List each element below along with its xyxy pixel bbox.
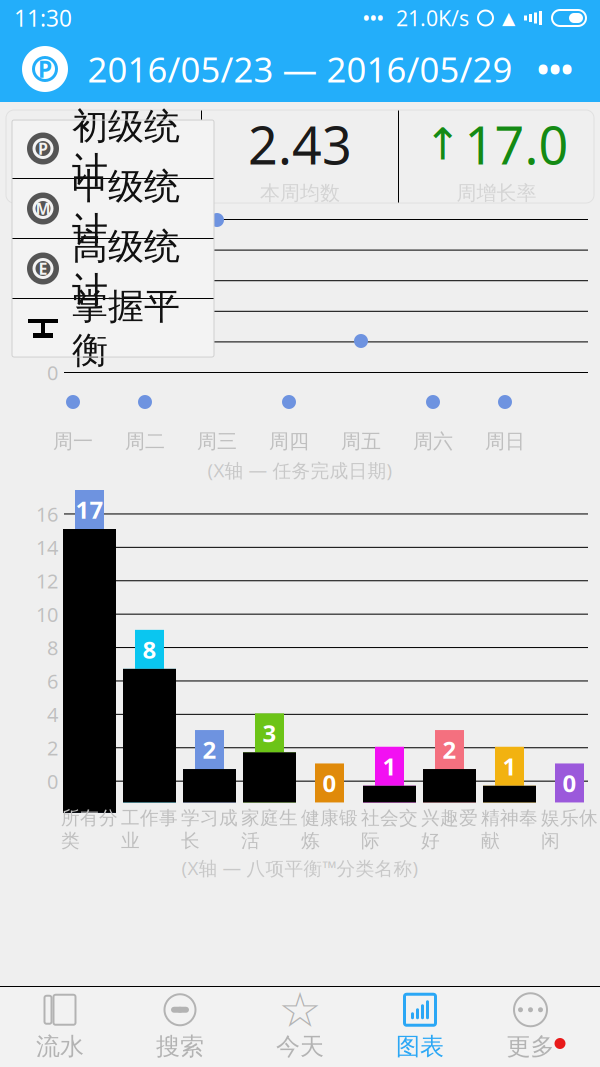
staticText: 今天 <box>276 1032 324 1061</box>
button[interactable]: 图表 <box>360 987 480 1067</box>
staticText: ↑ <box>424 119 461 169</box>
staticText: ▲ <box>502 8 515 28</box>
staticText: 0 <box>322 767 336 799</box>
staticText: 17.0 <box>464 110 568 179</box>
staticText: 2016/05/23 — 2016/05/29 <box>87 46 512 92</box>
staticText: M <box>35 198 50 219</box>
staticText: 周一 <box>53 429 93 454</box>
staticText: 兴趣爱好 <box>421 806 478 852</box>
staticText: 6 <box>47 668 58 694</box>
staticText: 12 <box>36 567 58 594</box>
staticText: 4 <box>47 701 58 728</box>
staticText: P <box>38 138 48 159</box>
staticText: 8 <box>47 237 58 263</box>
staticText: 周四 <box>269 429 309 454</box>
staticText: 更多 <box>506 1032 554 1061</box>
staticText: E <box>38 258 47 279</box>
staticText: 17 <box>75 494 103 525</box>
staticText: 14 <box>36 534 58 561</box>
staticText: 10 <box>36 206 58 233</box>
button[interactable]: M <box>12 179 214 238</box>
staticText: (X轴 — 八项平衡™分类名称) <box>181 855 418 880</box>
staticText: 周日 <box>485 429 525 454</box>
staticText: 中级统计 <box>72 164 180 253</box>
staticText: 娱乐休闲 <box>541 806 598 852</box>
staticText: 学习成长 <box>181 806 238 852</box>
staticText: 2 <box>442 734 456 765</box>
staticText: 周五 <box>341 429 381 454</box>
staticText: 掌握平衡 <box>72 284 180 373</box>
staticText: 周二 <box>125 429 165 454</box>
staticText: 流水 <box>36 1032 84 1061</box>
staticText: 2 <box>47 329 58 355</box>
button[interactable]: ☆ <box>240 987 360 1067</box>
staticText: 8 <box>47 634 58 661</box>
staticText: 21.0K/s <box>396 4 469 32</box>
staticText: 周三 <box>197 429 237 454</box>
staticText: ••• <box>363 6 384 29</box>
staticText: 初级统计 <box>72 104 180 193</box>
staticText: (X轴 — 任务完成日期) <box>207 458 392 482</box>
staticText: 本周均数 <box>260 181 340 205</box>
staticText: P <box>38 54 52 84</box>
staticText: 社会交际 <box>361 806 418 852</box>
staticText: 6 <box>47 267 58 294</box>
staticText: 周增长率 <box>456 181 536 205</box>
staticText: 工作事业 <box>121 806 178 852</box>
staticText: 所有分类 <box>61 806 118 852</box>
staticText: 16 <box>36 501 58 527</box>
staticText: 1 <box>382 750 396 782</box>
staticText: ••• <box>537 48 573 90</box>
staticText: 0 <box>562 767 576 799</box>
button[interactable]: 搜索 <box>120 987 240 1067</box>
staticText: 1 <box>502 750 516 782</box>
staticText: 0 <box>47 359 58 386</box>
button[interactable]: 更多操作 <box>522 36 588 102</box>
staticText: 精神奉献 <box>481 806 538 852</box>
staticText: 图表 <box>396 1032 444 1061</box>
staticText: 10 <box>36 601 58 627</box>
staticText: 周六 <box>413 429 453 454</box>
staticText: 2.43 <box>248 110 352 179</box>
staticText: 8 <box>142 633 156 665</box>
staticText: 搜索 <box>156 1032 204 1061</box>
staticText: 0 <box>47 768 58 794</box>
staticText: 健康锻炼 <box>301 806 358 852</box>
button[interactable]: P <box>12 119 214 178</box>
button[interactable]: 更多 <box>480 987 600 1067</box>
button[interactable]: E <box>12 239 214 298</box>
staticText: 家庭生活 <box>241 806 298 852</box>
staticText: 4 <box>47 298 58 325</box>
staticText: 2 <box>47 734 58 761</box>
staticText: 2 <box>202 734 216 765</box>
button[interactable]: 流水 <box>0 987 120 1067</box>
staticText: ☆ <box>278 982 321 1037</box>
staticText: 3 <box>262 717 276 749</box>
button[interactable]: 统计级别 <box>12 36 78 102</box>
staticText: 11:30 <box>14 3 72 33</box>
button[interactable]: 掌握平衡 <box>12 299 214 358</box>
staticText: 高级统计 <box>72 224 180 313</box>
